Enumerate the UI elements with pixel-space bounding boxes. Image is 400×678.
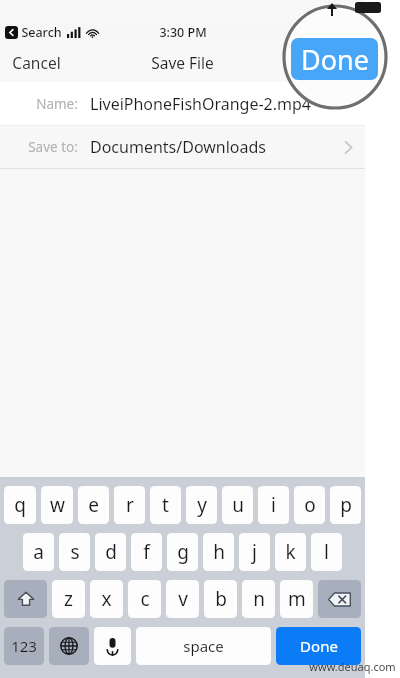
button[interactable]: n (242, 580, 275, 618)
staticText: Name: (36, 95, 78, 113)
staticText: x (101, 586, 112, 612)
button[interactable]: p (330, 486, 361, 524)
button[interactable]: Next keyboard (49, 627, 89, 665)
button[interactable]: u (222, 486, 253, 524)
button[interactable]: y (186, 486, 217, 524)
staticText: 123 (11, 636, 37, 656)
button[interactable]: z (52, 580, 85, 618)
button[interactable]: e (78, 486, 109, 524)
staticText: d (105, 539, 117, 565)
button[interactable]: g (167, 533, 198, 571)
staticText: g (177, 539, 189, 565)
button[interactable]: f (131, 533, 162, 571)
button[interactable]: Done (276, 627, 361, 665)
button[interactable]: x (90, 580, 123, 618)
button[interactable]: m (280, 580, 313, 618)
staticText: Documents/Downloads (90, 136, 266, 158)
button[interactable]: Backspace (318, 580, 361, 618)
button[interactable]: Done (291, 38, 378, 80)
staticText: e (88, 492, 99, 518)
staticText: Done (301, 41, 369, 78)
button[interactable]: v (166, 580, 199, 618)
button[interactable]: Dictate (94, 627, 131, 665)
staticText: o (304, 492, 316, 518)
button[interactable]: b (204, 580, 237, 618)
button[interactable]: i (258, 486, 289, 524)
staticText: space (183, 636, 224, 656)
staticText: a (33, 539, 44, 565)
staticText: s (70, 539, 80, 565)
button[interactable]: Save to: (0, 126, 365, 168)
staticText: LiveiPhoneFishOrange-2.mp4 (90, 93, 311, 115)
staticText: www.deuaq.com (309, 659, 396, 674)
button[interactable]: r (114, 486, 145, 524)
staticText: p (340, 492, 352, 518)
button[interactable]: t (150, 486, 181, 524)
button[interactable]: Shift (4, 580, 47, 618)
staticText: r (126, 492, 134, 518)
button[interactable]: c (128, 580, 161, 618)
button[interactable]: h (203, 533, 234, 571)
staticText: z (64, 586, 73, 612)
staticText: Save to: (28, 138, 78, 156)
staticText: 3:30 PM (159, 24, 207, 41)
staticText: Search (21, 24, 62, 41)
staticText: t (162, 492, 169, 518)
staticText: y (197, 492, 207, 518)
staticText: f (143, 539, 150, 565)
staticText: k (285, 539, 296, 565)
staticText: l (324, 539, 329, 565)
staticText: b (215, 586, 227, 612)
staticText: c (140, 586, 150, 612)
button[interactable]: j (239, 533, 270, 571)
button[interactable]: d (95, 533, 126, 571)
staticText: Done (300, 636, 338, 656)
staticText: w (50, 492, 65, 518)
staticText: Save File (151, 52, 214, 73)
button[interactable]: w (41, 486, 73, 524)
button[interactable]: space (136, 627, 271, 665)
staticText: j (252, 539, 257, 565)
staticText: n (253, 586, 265, 612)
button[interactable]: Done (307, 49, 359, 75)
button[interactable]: s (59, 533, 90, 571)
button[interactable]: Name: (0, 82, 365, 126)
button[interactable]: k (275, 533, 306, 571)
staticText: h (213, 539, 225, 565)
staticText: Cancel (12, 52, 61, 73)
staticText: u (232, 492, 244, 518)
staticText: Done (314, 52, 352, 72)
button[interactable]: 123 (4, 627, 44, 665)
button[interactable]: l (311, 533, 342, 571)
staticText: m (288, 586, 306, 612)
button[interactable]: a (23, 533, 54, 571)
staticText: i (271, 492, 276, 518)
staticText: q (14, 492, 26, 518)
button[interactable]: q (4, 486, 36, 524)
staticText: v (178, 586, 188, 612)
button[interactable]: o (294, 486, 325, 524)
button[interactable]: Cancel (0, 44, 73, 81)
